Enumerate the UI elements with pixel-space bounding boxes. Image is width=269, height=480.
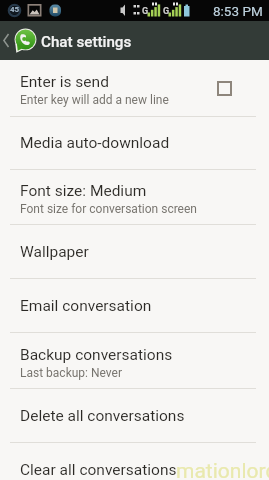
staticText: Last backup: Never — [20, 366, 122, 380]
button[interactable]: Wallpaper — [0, 225, 269, 278]
staticText: Wallpaper — [20, 243, 89, 261]
staticText: mationlord — [176, 459, 269, 480]
button[interactable]: Font size: Medium — [0, 170, 269, 224]
button[interactable]: Clear all conversations — [0, 443, 269, 480]
button[interactable]: Navigate up — [0, 21, 37, 60]
staticText: Delete all conversations — [20, 407, 185, 425]
staticText: Enter key will add a new line — [20, 93, 169, 107]
staticText: 8:53 PM — [213, 3, 263, 19]
staticText: Enter is send — [20, 73, 109, 91]
staticText: Media auto-download — [20, 134, 170, 152]
staticText: G — [163, 6, 170, 17]
button[interactable]: Enter is send — [0, 60, 269, 116]
button[interactable]: Backup conversations — [0, 333, 269, 388]
staticText: Backup conversations — [20, 346, 173, 364]
button[interactable]: Email conversation — [0, 279, 269, 332]
staticText: G — [142, 6, 149, 17]
button[interactable]: Media auto-download — [0, 117, 269, 169]
staticText: Font size for conversation screen — [20, 202, 197, 216]
staticText: Email conversation — [20, 297, 152, 315]
staticText: Font size: Medium — [20, 182, 147, 200]
staticText: Clear all conversations — [20, 461, 177, 479]
staticText: 45 — [10, 5, 20, 14]
staticText: Chat settings — [41, 33, 132, 51]
button[interactable]: Delete all conversations — [0, 389, 269, 442]
